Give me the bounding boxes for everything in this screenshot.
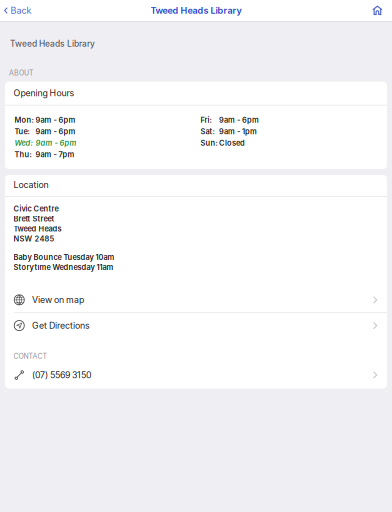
button[interactable]: Back: [0, 0, 37, 21]
staticText: Back: [10, 5, 31, 16]
staticText: Sat:: [200, 127, 214, 136]
staticText: 9am - 6pm: [35, 127, 75, 136]
staticText: Civic Centre: [13, 204, 58, 213]
staticText: Storytime Wednesday 11am: [13, 263, 113, 272]
staticText: View on map: [32, 294, 84, 305]
staticText: Wed:: [14, 138, 32, 147]
staticText: ABOUT: [9, 69, 33, 77]
staticText: Opening Hours: [13, 88, 74, 98]
button[interactable]: Get Directions: [5, 313, 387, 338]
staticText: 9am - 1pm: [219, 127, 257, 136]
staticText: NSW 2485: [13, 234, 54, 243]
staticText: Thu:: [14, 150, 31, 159]
staticText: Tweed Heads: [13, 224, 61, 233]
staticText: Tweed Heads Library: [150, 5, 241, 16]
staticText: 9am - 6pm: [35, 138, 76, 147]
staticText: Get Directions: [32, 320, 90, 331]
staticText: Baby Bounce Tuesday 10am: [13, 253, 114, 262]
staticText: 9am - 6pm: [219, 115, 259, 124]
staticText: Closed: [219, 138, 245, 147]
button[interactable]: (07) 5569 3150: [5, 362, 387, 387]
button[interactable]: View on map: [5, 287, 387, 312]
staticText: CONTACT: [13, 352, 46, 360]
staticText: Location: [13, 179, 48, 190]
staticText: Fri:: [200, 115, 211, 124]
staticText: (07) 5569 3150: [32, 370, 92, 380]
staticText: 9am - 6pm: [35, 115, 75, 124]
staticText: Brett Street: [13, 214, 54, 223]
staticText: Mon:: [14, 115, 33, 124]
staticText: Tue:: [14, 127, 29, 136]
staticText: Sun:: [200, 138, 217, 147]
staticText: Tweed Heads Library: [10, 39, 95, 49]
button[interactable]: Home: [373, 0, 392, 21]
staticText: 9am - 7pm: [35, 150, 74, 159]
